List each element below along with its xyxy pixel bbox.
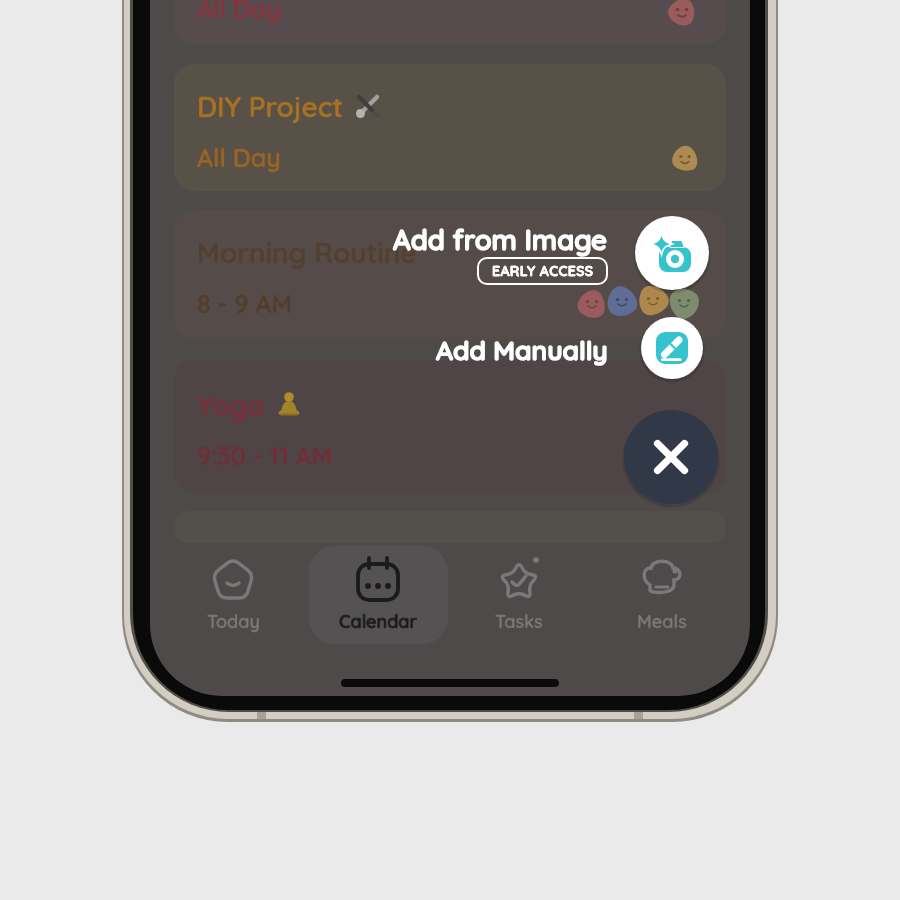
staticText: EARLY ACCESS [492,262,594,280]
staticText: 9:30 - 11 AM [197,440,333,471]
staticText: Today [207,610,260,633]
staticText: All Day [197,142,281,173]
button[interactable]: Calendar [308,546,448,644]
staticText: EARLY ACCESS [492,262,594,280]
button[interactable]: EARLY ACCESS [477,257,608,285]
staticText: 9:30 - 11 AM [197,440,333,471]
staticText: Yoga [197,388,265,423]
staticText: Add from Image [393,222,608,256]
staticText: Calendar [339,610,418,633]
button[interactable] [624,410,718,504]
button[interactable] [635,216,709,290]
staticText: Meals [637,610,687,633]
staticText: Calendar [339,610,418,633]
staticText: Morning Routine [197,235,417,270]
staticText: All Day [197,0,281,24]
staticText: Today [207,610,260,633]
staticText: Morning Routine [197,235,417,270]
staticText: Meals [637,610,687,633]
staticText: Add Manually [436,333,608,366]
staticText: Tasks [495,610,543,633]
staticText: Tasks [495,610,543,633]
staticText: Add from Image [393,222,608,256]
staticText: All Day [197,142,281,173]
button[interactable]: Today [163,546,303,644]
staticText: All Day [197,0,281,24]
button[interactable] [641,317,703,379]
staticText: DIY Project [197,89,344,124]
staticText: 8 - 9 AM [197,288,293,319]
button[interactable]: Tasks [449,546,589,644]
staticText: DIY Project [197,89,344,124]
button[interactable]: Meals [592,546,732,644]
staticText: Yoga [197,388,265,423]
staticText: Add Manually [436,333,608,366]
staticText: 8 - 9 AM [197,288,293,319]
